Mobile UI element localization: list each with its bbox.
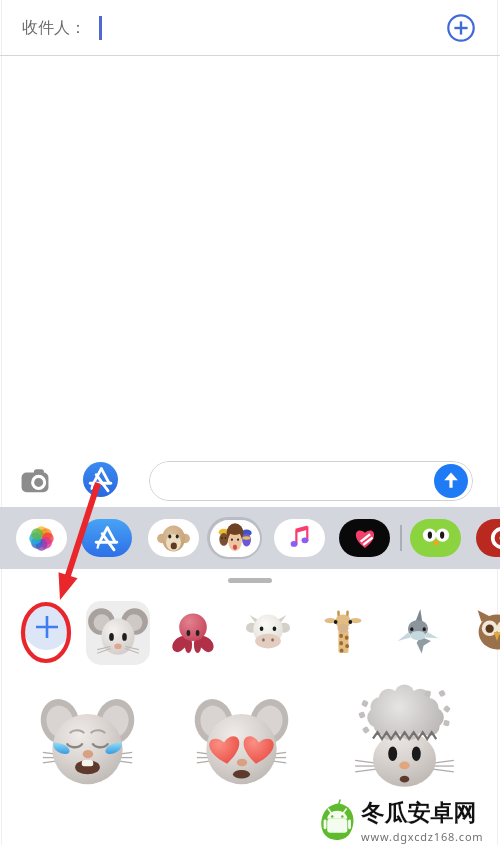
button[interactable]: Mouse memoji: [86, 601, 150, 665]
button[interactable]: App Store: [81, 519, 132, 557]
button[interactable]: Duolingo: [410, 519, 461, 557]
button[interactable]: [149, 461, 473, 501]
button[interactable]: Send: [434, 464, 468, 498]
button[interactable]: Add contact: [444, 11, 478, 45]
button[interactable]: Animoji: [164, 602, 222, 660]
button[interactable]: App: [274, 519, 325, 557]
button[interactable]: Animoji: [468, 602, 500, 660]
button[interactable]: New Memoji: [23, 603, 70, 650]
button[interactable]: Animoji: [314, 602, 372, 660]
button[interactable]: Another app: [476, 519, 500, 557]
staticText: 收件人：: [22, 18, 86, 38]
button[interactable]: App: [148, 519, 199, 557]
staticText: www.dgxcdz168.com: [361, 829, 484, 844]
button[interactable]: Fitness: [339, 519, 390, 557]
button[interactable]: Crying mouse memoji: [40, 695, 135, 790]
button[interactable]: Animoji: [239, 602, 297, 660]
button[interactable]: App: [16, 519, 67, 557]
button[interactable]: Memoji app: [207, 517, 262, 559]
button[interactable]: Mind blown mouse memoji: [352, 686, 457, 791]
button[interactable]: Heart eyes mouse memoji: [194, 695, 289, 790]
staticText: 冬瓜安卓网: [361, 799, 476, 828]
button[interactable]: Animoji: [389, 602, 447, 660]
button[interactable]: Camera: [18, 464, 52, 498]
button[interactable]: App Store: [83, 462, 118, 497]
